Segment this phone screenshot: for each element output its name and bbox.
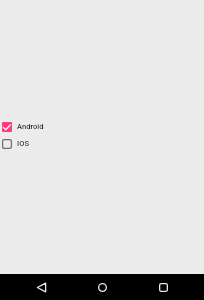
button[interactable]: Back [11,274,72,300]
staticText: IOS [17,139,29,148]
button[interactable]: Android [0,118,204,135]
button[interactable]: IOS [0,135,204,152]
staticText: Android [17,122,44,131]
button[interactable]: Home [72,274,133,300]
button[interactable]: Recent apps [133,274,194,300]
